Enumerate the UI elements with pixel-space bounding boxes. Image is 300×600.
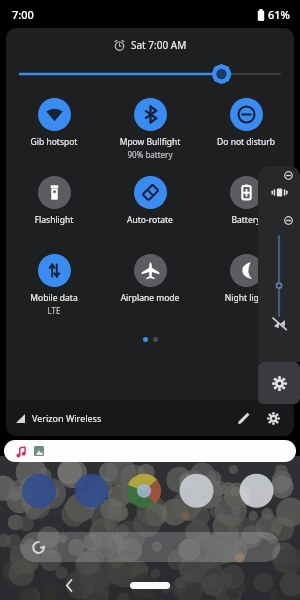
button[interactable]: Verizon Wireless <box>16 412 102 424</box>
button[interactable]: Home <box>130 582 170 589</box>
button[interactable]: Settings <box>260 405 286 431</box>
staticText: LTE <box>6 305 102 316</box>
staticText: Flashlight <box>8 214 100 226</box>
staticText: Auto-rotate <box>104 214 196 226</box>
button[interactable]: Sat 7:00 AM <box>6 38 294 52</box>
button[interactable]: Auto-rotate <box>102 173 198 245</box>
staticText: Mpow Bullfight <box>104 136 196 148</box>
staticText: Battery <box>200 214 292 226</box>
button[interactable]: Battery <box>198 173 294 245</box>
button[interactable]: Edit tiles <box>230 405 256 431</box>
staticText: 7:00 <box>12 7 34 22</box>
staticText: 90% battery <box>102 149 198 160</box>
button[interactable]: Mute <box>271 315 288 332</box>
staticText: Verizon Wireless <box>32 412 102 424</box>
button[interactable]: Search <box>20 532 280 562</box>
staticText: Airplane mode <box>104 292 196 304</box>
button[interactable]: Mpow Bullfight <box>102 95 198 167</box>
button[interactable]: Night light <box>198 251 294 323</box>
button[interactable]: Flashlight <box>6 173 102 245</box>
staticText: Mobile data <box>8 292 100 304</box>
button[interactable]: Sound settings <box>258 362 300 404</box>
button[interactable] <box>4 440 296 462</box>
staticText: Night light <box>200 292 292 304</box>
button[interactable]: Back <box>56 572 82 598</box>
staticText: 61% <box>268 7 290 22</box>
staticText: Do not disturb <box>200 136 292 148</box>
button[interactable]: Gib hotspot <box>6 95 102 167</box>
button[interactable]: Ringer mode vibrate <box>258 166 300 210</box>
button[interactable]: Mobile data <box>6 251 102 323</box>
staticText: Sat 7:00 AM <box>131 38 187 52</box>
button[interactable]: Airplane mode <box>102 251 198 323</box>
staticText: Gib hotspot <box>8 136 100 148</box>
button[interactable]: Media volume <box>272 236 286 316</box>
button[interactable]: Do not disturb <box>198 95 294 167</box>
button[interactable]: Brightness <box>20 63 280 85</box>
